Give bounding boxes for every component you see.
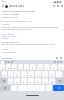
button[interactable]: ,: [11, 85, 17, 91]
button[interactable]: l: [56, 71, 62, 77]
button[interactable]: Video call: [56, 4, 60, 8]
staticText: .: [49, 87, 50, 90]
staticText: Jessica Lane: [9, 4, 24, 8]
staticText: y: [32, 66, 34, 69]
staticText: s: [10, 73, 12, 76]
button[interactable]: Call: [52, 4, 56, 8]
staticText: a: [4, 73, 6, 76]
button[interactable]: Shift: [0, 78, 7, 84]
button[interactable]: t: [24, 64, 29, 70]
button[interactable]: z: [8, 78, 13, 84]
button[interactable]: q: [0, 64, 5, 70]
button[interactable]: k: [49, 71, 55, 77]
button[interactable]: f: [21, 71, 27, 77]
button[interactable]: j: [42, 71, 48, 77]
staticText: Looks amazing: [2, 12, 19, 15]
staticText: 9:41: [2, 0, 7, 3]
staticText: x: [16, 80, 18, 83]
staticText: See you then: [2, 51, 16, 54]
button[interactable]: w: [6, 64, 11, 70]
staticText: n: [44, 80, 46, 83]
staticText: Good morning: [2, 40, 19, 43]
button[interactable]: i: [44, 64, 50, 70]
staticText: my feedback in the morning: [2, 28, 31, 31]
staticText: Thanks!: [2, 23, 10, 26]
button[interactable]: Send message: [53, 85, 64, 91]
staticText: q: [2, 66, 4, 69]
staticText: Check this out: [2, 16, 18, 19]
staticText: drive.google.com/file/d/1a: [1, 19, 33, 22]
staticText: I will go through everything later tonig…: [2, 26, 59, 29]
button[interactable]: s: [8, 71, 13, 77]
staticText: Message: [2, 56, 12, 59]
staticText: l: [59, 73, 60, 76]
button[interactable]: e: [12, 64, 17, 70]
staticText: Sure thing: [2, 32, 14, 35]
button[interactable]: Emoji: [55, 56, 59, 60]
button[interactable]: Jessica Lane: [9, 4, 52, 8]
button[interactable]: o: [51, 64, 57, 70]
staticText: see you soon: [2, 34, 17, 37]
staticText: e: [14, 66, 16, 69]
staticText: How's the new project going?: [2, 9, 35, 12]
staticText: o: [53, 66, 55, 69]
button[interactable]: n: [42, 78, 48, 84]
button[interactable]: y: [30, 64, 36, 70]
staticText: u: [39, 66, 41, 69]
staticText: w: [8, 66, 10, 69]
staticText: Perfect: [2, 48, 9, 51]
button[interactable]: g: [28, 71, 34, 77]
button[interactable]: p: [58, 64, 64, 70]
button[interactable]: Backspace: [56, 78, 64, 84]
button[interactable]: u: [37, 64, 43, 70]
staticText: r: [20, 66, 21, 69]
button[interactable]: c: [21, 78, 27, 84]
button[interactable]: Contact photo: [5, 5, 8, 8]
staticText: b: [37, 80, 39, 83]
staticText: Today: [2, 37, 8, 40]
staticText: i: [47, 66, 48, 69]
button[interactable]: r: [18, 64, 23, 70]
button[interactable]: x: [14, 78, 20, 84]
staticText: p: [60, 66, 62, 69]
staticText: z: [10, 80, 12, 83]
button[interactable]: d: [14, 71, 20, 77]
button[interactable]: v: [28, 78, 34, 84]
staticText: j: [45, 73, 46, 76]
button[interactable]: More options: [60, 4, 64, 8]
staticText: m: [51, 80, 54, 83]
button[interactable]: Back: [1, 4, 5, 8]
staticText: d: [16, 73, 18, 76]
staticText: f: [24, 73, 25, 76]
staticText: h: [37, 73, 39, 76]
button[interactable]: m: [49, 78, 55, 84]
button[interactable]: h: [35, 71, 41, 77]
staticText: g: [30, 73, 32, 76]
staticText: v: [30, 80, 32, 83]
button[interactable]: a: [2, 71, 7, 77]
staticText: c: [23, 80, 25, 83]
staticText: Just landed, heading to the hotel now se…: [2, 43, 55, 46]
staticText: t: [26, 66, 27, 69]
button[interactable]: b: [35, 78, 41, 84]
button[interactable]: Google search: [1, 61, 4, 64]
button[interactable]: Numbers and symbols: [0, 85, 10, 91]
staticText: k: [51, 73, 53, 76]
button[interactable]: Message: [2, 55, 55, 60]
button[interactable]: Send: [59, 56, 63, 60]
